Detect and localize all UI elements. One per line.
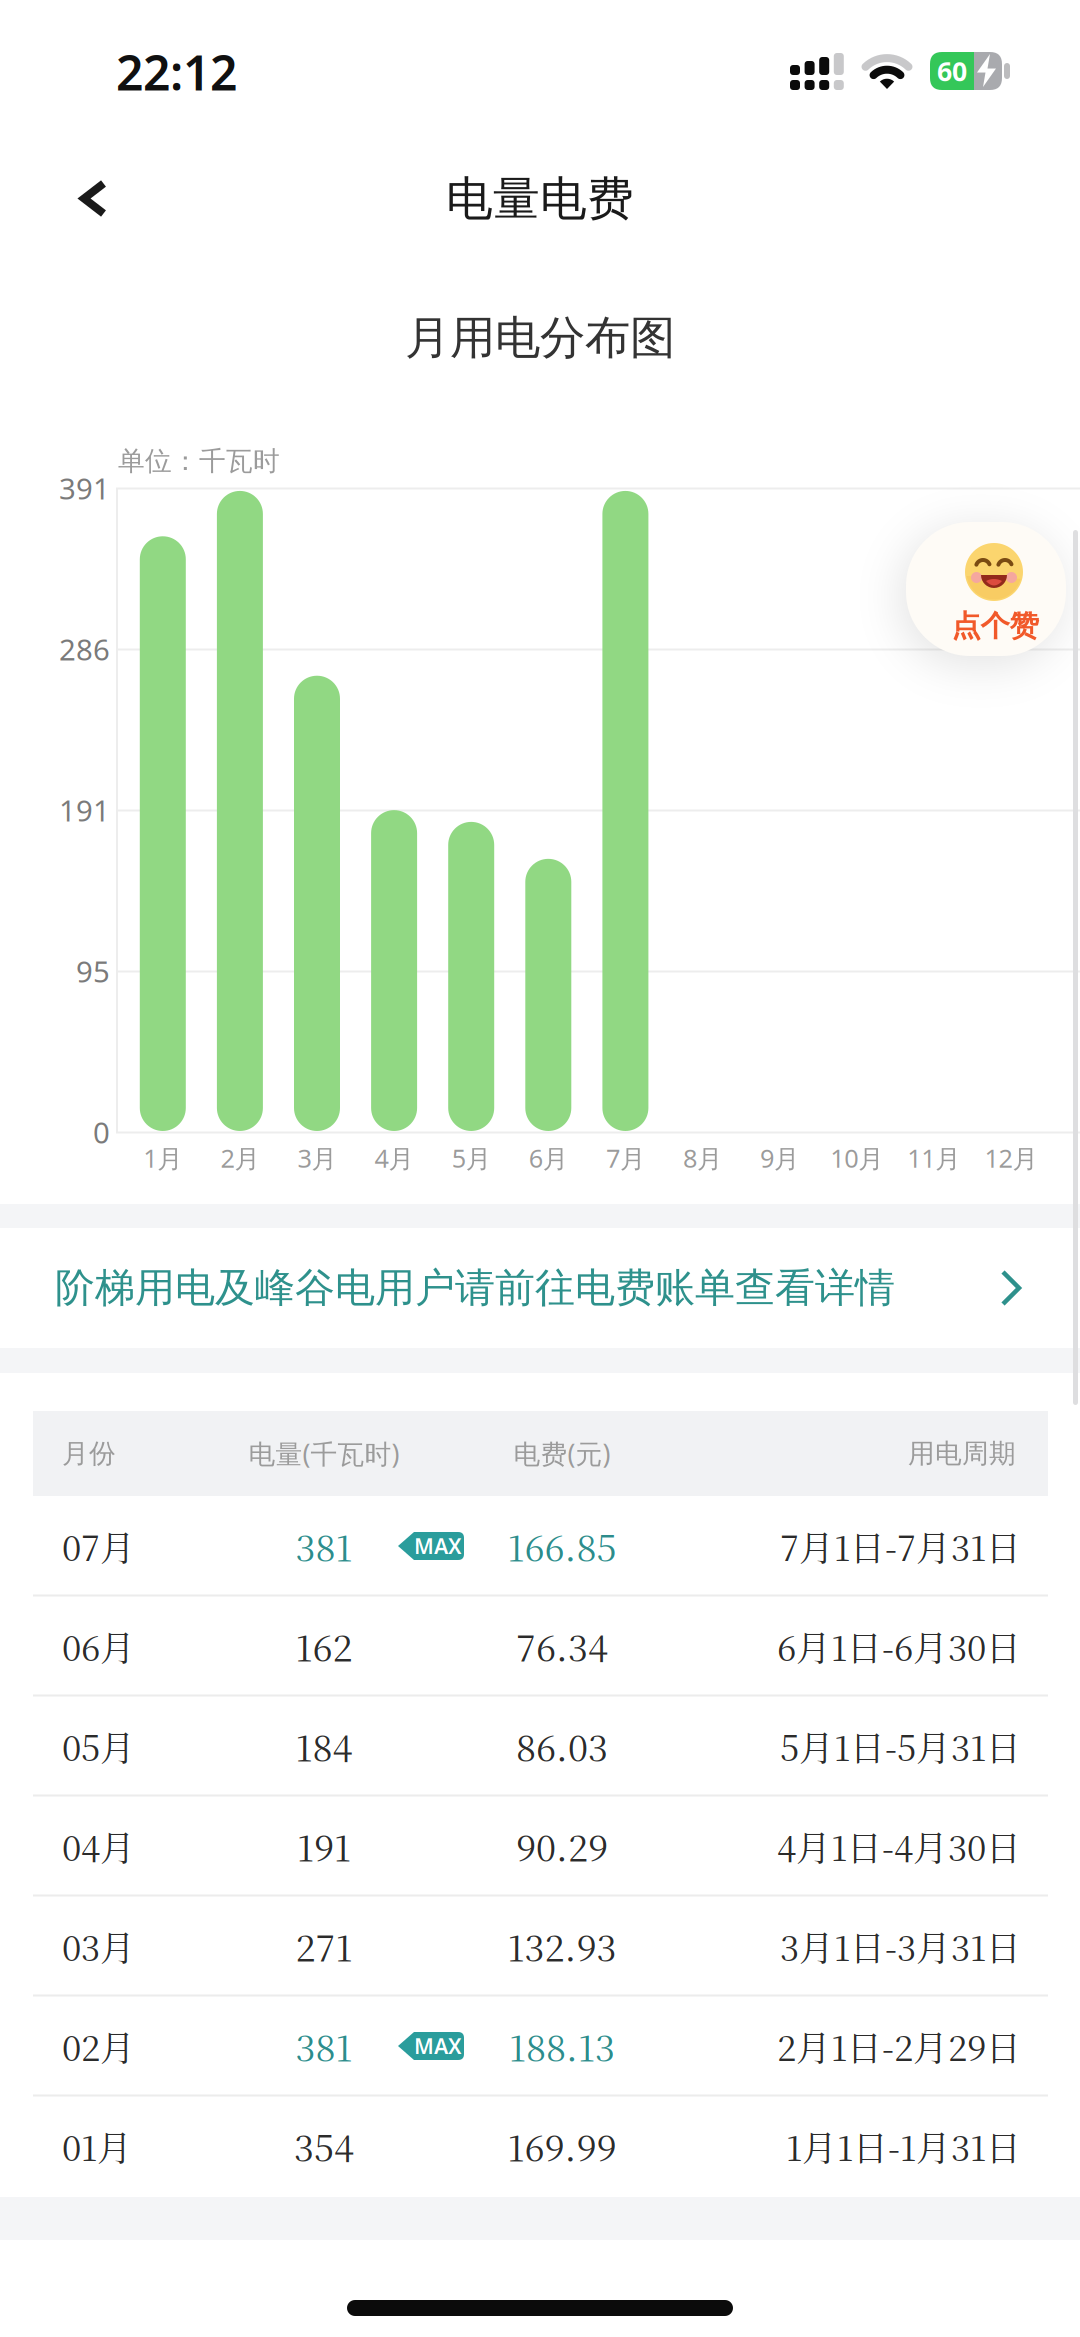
staticText: 4月 — [375, 1141, 414, 1175]
button[interactable]: 阶梯用电及峰谷电用户请前往电费账单查看详情 — [0, 1228, 1080, 1348]
staticText: 22:12 — [116, 40, 237, 104]
staticText: 3月1日-3月31日 — [780, 1921, 1021, 1971]
staticText: 0 — [93, 1112, 110, 1151]
staticText: 12月 — [984, 1141, 1037, 1175]
staticText: 8月 — [683, 1141, 722, 1175]
staticText: 阶梯用电及峰谷电用户请前往电费账单查看详情 — [55, 1263, 895, 1312]
staticText: 166.85 — [507, 1520, 616, 1572]
staticText: 5月1日-5月31日 — [780, 1721, 1021, 1771]
button[interactable]: 点个赞 — [915, 522, 1075, 656]
staticText: 点个赞 — [951, 608, 1038, 644]
staticText: MAX — [414, 2032, 462, 2060]
staticText: 3月 — [297, 1141, 336, 1175]
staticText: 60 — [937, 53, 967, 89]
staticText: 07月 — [62, 1521, 135, 1571]
staticText: 9月 — [760, 1141, 799, 1175]
staticText: 单位：千瓦时 — [118, 445, 280, 477]
staticText: 11月 — [907, 1141, 960, 1175]
staticText: 354 — [294, 2120, 354, 2172]
staticText: 1月1日-1月31日 — [786, 2121, 1021, 2171]
staticText: 06月 — [62, 1621, 135, 1671]
staticText: 86.03 — [516, 1720, 608, 1772]
staticText: 95 — [76, 951, 110, 990]
staticText: 4月1日-4月30日 — [777, 1821, 1021, 1871]
staticText: 02月 — [62, 2021, 135, 2071]
button[interactable] — [50, 163, 140, 233]
staticText: 188.13 — [509, 2020, 615, 2072]
staticText: 电费(元) — [513, 1436, 610, 1471]
staticText: 286 — [59, 629, 110, 668]
staticText: 电量(千瓦时) — [248, 1436, 399, 1471]
staticText: 76.34 — [516, 1620, 608, 1672]
staticText: 03月 — [62, 1921, 135, 1971]
staticText: 6月1日-6月30日 — [777, 1621, 1021, 1671]
staticText: 电量电费 — [446, 170, 634, 228]
staticText: 169.99 — [507, 2120, 616, 2172]
staticText: 7月 — [606, 1141, 645, 1175]
staticText: 7月1日-7月31日 — [780, 1521, 1021, 1571]
staticText: 1月 — [143, 1141, 182, 1175]
staticText: 月用电分布图 — [405, 310, 675, 366]
staticText: 381 — [295, 2020, 352, 2072]
staticText: 184 — [295, 1720, 352, 1772]
staticText: 381 — [295, 1520, 352, 1572]
staticText: 2月 — [220, 1141, 259, 1175]
staticText: 04月 — [62, 1821, 135, 1871]
staticText: 5月 — [452, 1141, 491, 1175]
staticText: 191 — [297, 1820, 351, 1872]
staticText: 01月 — [62, 2121, 132, 2171]
staticText: 2月1日-2月29日 — [777, 2021, 1021, 2071]
staticText: 90.29 — [516, 1820, 608, 1872]
staticText: 132.93 — [507, 1920, 616, 1972]
staticText: 05月 — [62, 1721, 135, 1771]
staticText: 月份 — [62, 1437, 116, 1470]
staticText: 191 — [59, 790, 110, 829]
staticText: 271 — [295, 1920, 352, 1972]
staticText: MAX — [414, 1532, 462, 1560]
staticText: 10月 — [830, 1141, 883, 1175]
staticText: 用电周期 — [908, 1437, 1016, 1470]
staticText: 162 — [295, 1620, 352, 1672]
staticText: 391 — [59, 468, 110, 507]
staticText: 6月 — [529, 1141, 568, 1175]
